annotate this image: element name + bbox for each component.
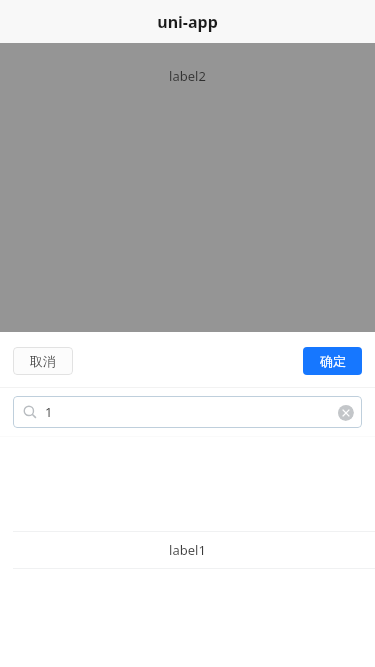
button[interactable]: 1 — [13, 396, 362, 428]
staticText: 1 — [45, 403, 53, 421]
button[interactable]: 取消 — [13, 347, 73, 375]
staticText: label2 — [169, 67, 206, 85]
staticText: 确定 — [320, 353, 346, 369]
staticText: label1 — [169, 541, 206, 559]
button[interactable]: Clear text — [337, 404, 354, 421]
staticText: uni-app — [157, 11, 218, 33]
staticText: 取消 — [30, 353, 56, 369]
button[interactable]: 确定 — [303, 347, 362, 375]
button[interactable]: label1 — [0, 532, 375, 568]
